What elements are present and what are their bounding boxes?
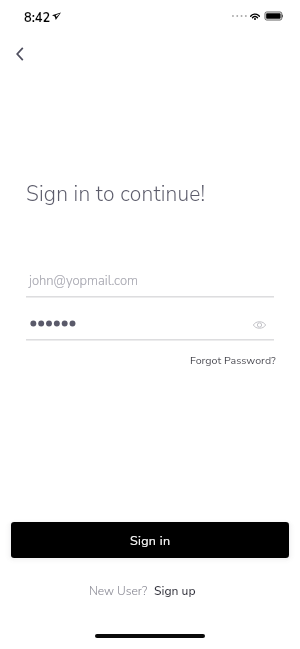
staticText: Forgot Password?	[190, 353, 276, 367]
staticText: New User?	[89, 583, 148, 599]
staticText: Sign in to continue!	[26, 180, 206, 209]
button[interactable]: Back	[6, 40, 34, 68]
staticText: john@yopmail.com	[29, 272, 139, 290]
button[interactable]: Password field	[26, 310, 242, 339]
staticText: Sign up	[154, 583, 196, 599]
button[interactable]: Show password	[248, 314, 270, 336]
button[interactable]: Sign in	[11, 522, 289, 558]
button[interactable]: Email address field	[26, 266, 274, 296]
staticText: 8:42	[24, 9, 51, 26]
button[interactable]: Forgot Password?	[184, 347, 282, 373]
button[interactable]: Sign up	[150, 579, 200, 603]
staticText: Sign in	[130, 532, 171, 549]
